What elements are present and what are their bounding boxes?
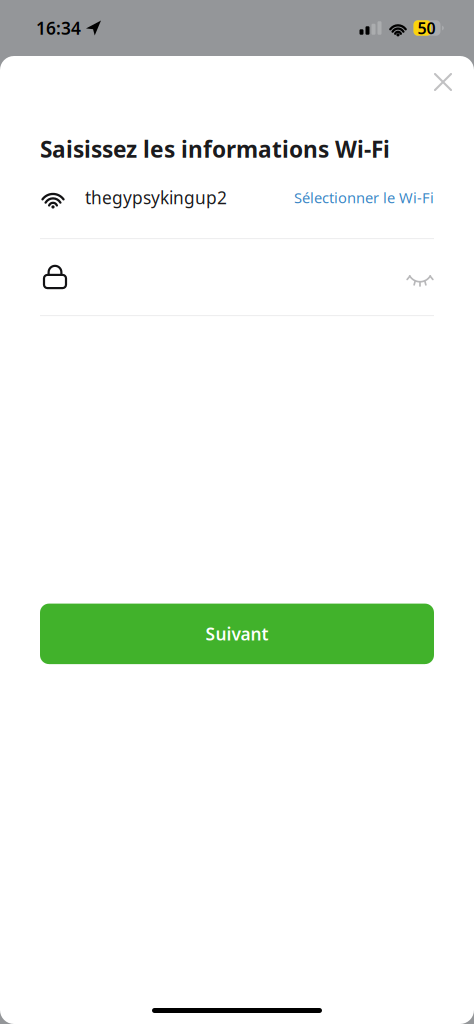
staticText: Sélectionner le Wi-Fi	[294, 188, 434, 207]
button[interactable]: Afficher le mot de passe	[406, 258, 434, 294]
staticText: 50	[417, 17, 435, 39]
staticText: thegypsykingup2	[85, 186, 227, 209]
button[interactable]: Sélectionner le Wi-Fi	[294, 188, 434, 207]
button[interactable]: Suivant	[40, 604, 434, 664]
staticText: Suivant	[205, 622, 268, 645]
staticText: Saisissez les informations Wi-Fi	[40, 134, 390, 164]
button[interactable]: Fermer	[421, 60, 465, 104]
staticText: 16:34	[36, 16, 81, 39]
